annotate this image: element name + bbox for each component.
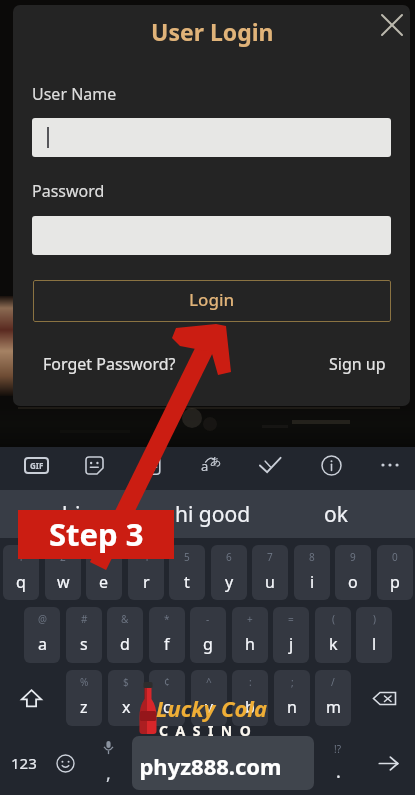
staticText: User Name	[32, 83, 117, 105]
staticText: !?	[334, 742, 342, 756]
staticText: q	[16, 571, 26, 593]
staticText: m	[326, 696, 341, 718]
button[interactable]: 4	[128, 545, 164, 600]
other: More options	[379, 454, 401, 476]
staticText: a	[38, 633, 47, 655]
button[interactable]: 6	[211, 545, 247, 600]
button[interactable]: &	[107, 607, 143, 663]
button[interactable]: @	[24, 607, 60, 663]
staticText: GIF	[30, 460, 44, 471]
button[interactable]: 9	[335, 545, 371, 600]
staticText: a	[201, 457, 209, 475]
staticText: p	[390, 571, 400, 593]
button[interactable]: Backspace	[354, 670, 415, 726]
button[interactable]: %	[66, 670, 102, 726]
button[interactable]: =	[273, 607, 309, 663]
staticText: Forget Password?	[43, 353, 176, 375]
button[interactable]: $	[108, 670, 144, 726]
button[interactable]: More options	[373, 448, 407, 482]
staticText: x	[122, 696, 131, 718]
staticText: s	[80, 633, 88, 655]
button[interactable]: Enter	[362, 736, 415, 790]
staticText: Password	[32, 180, 105, 202]
button[interactable]: ok	[282, 490, 390, 538]
other: Spell check	[258, 453, 282, 477]
button[interactable]: 0	[377, 545, 413, 600]
staticText: phyz888.com	[139, 751, 282, 781]
staticText: g	[203, 633, 213, 655]
staticText: j	[289, 633, 294, 655]
button[interactable]: 7	[252, 545, 288, 600]
button[interactable]: hi	[0, 490, 143, 538]
button[interactable]: Translate	[194, 448, 228, 482]
button[interactable]: Voice input	[87, 736, 129, 790]
button[interactable]: hi good	[143, 490, 282, 538]
staticText: *	[164, 612, 170, 626]
staticText: o	[348, 571, 358, 593]
button[interactable]: Shift	[0, 670, 62, 726]
staticText: &	[121, 612, 129, 626]
staticText: i	[310, 571, 315, 593]
button[interactable]: )	[356, 607, 392, 663]
other: Stickers	[84, 455, 105, 476]
button[interactable]: Stickers	[77, 448, 111, 482]
other: GIF	[24, 457, 49, 474]
staticText: +	[247, 612, 253, 626]
button[interactable]	[32, 216, 391, 255]
button[interactable]: +	[232, 607, 268, 663]
staticText: 0	[392, 550, 398, 564]
staticText: Login	[189, 288, 235, 311]
staticText: e	[99, 571, 109, 593]
button[interactable]	[32, 118, 391, 157]
staticText: 3	[101, 550, 107, 564]
staticText: User Login	[151, 16, 274, 47]
button[interactable]: 5	[169, 545, 205, 600]
staticText: 123	[11, 753, 37, 773]
button[interactable]: :	[232, 670, 268, 726]
button[interactable]: ¢	[149, 670, 185, 726]
staticText: 1	[18, 550, 24, 564]
other: Voice input	[101, 740, 116, 755]
other: Clipboard	[143, 455, 164, 476]
button[interactable]: Spell check	[253, 448, 287, 482]
staticText: Lucky Cola	[156, 693, 267, 723]
button[interactable]: 2	[45, 545, 81, 600]
button[interactable]: *	[149, 607, 185, 663]
staticText: /	[331, 675, 335, 689]
staticText: =	[288, 612, 294, 626]
staticText: あ	[210, 454, 222, 468]
staticText: ,	[106, 761, 111, 786]
button[interactable]: #	[66, 607, 102, 663]
button[interactable]: 8	[294, 545, 330, 600]
staticText: l	[372, 633, 377, 655]
button[interactable]: 3	[86, 545, 122, 600]
button[interactable]: -	[190, 607, 226, 663]
staticText: Step 3	[49, 513, 144, 555]
staticText: #	[81, 612, 88, 626]
button[interactable]: Emoji	[45, 736, 85, 790]
staticText: 4	[143, 550, 149, 564]
button[interactable]: Close	[374, 7, 410, 43]
button[interactable]: ;	[274, 670, 310, 726]
button[interactable]: 123	[0, 736, 48, 790]
staticText: v	[205, 696, 214, 718]
staticText: k	[329, 633, 338, 655]
staticText: u	[265, 571, 275, 593]
button[interactable]: GIF	[19, 448, 53, 482]
button[interactable]: !?	[317, 736, 359, 790]
button[interactable]: Login	[33, 280, 391, 322]
staticText: Sign up	[329, 353, 386, 375]
button[interactable]: Forget Password?	[43, 353, 176, 375]
button[interactable]: ^	[191, 670, 227, 726]
staticText: w	[57, 571, 70, 593]
staticText: (	[332, 612, 335, 626]
button[interactable]: Info	[314, 448, 348, 482]
button[interactable]: Space	[132, 736, 314, 790]
staticText: 2	[60, 550, 66, 564]
button[interactable]: Clipboard	[136, 448, 170, 482]
button[interactable]: /	[315, 670, 351, 726]
button[interactable]: Sign up	[329, 353, 386, 375]
button[interactable]: (	[315, 607, 351, 663]
staticText: %	[80, 675, 89, 689]
button[interactable]: 1	[3, 545, 39, 600]
